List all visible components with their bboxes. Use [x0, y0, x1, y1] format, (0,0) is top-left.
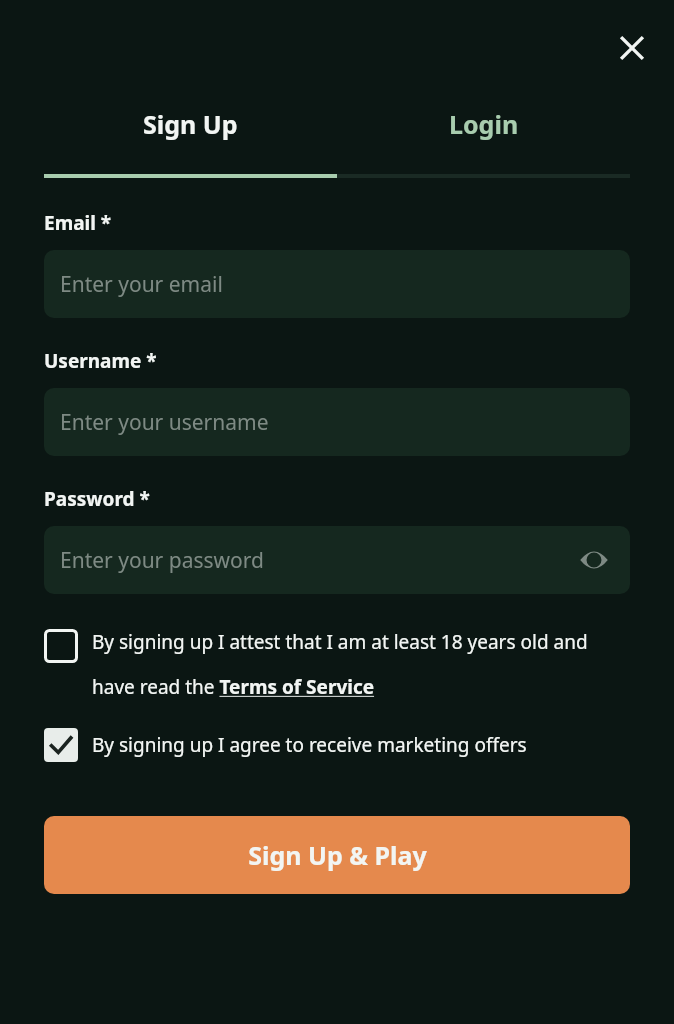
staticText: Login [449, 107, 519, 141]
button[interactable]: Login [337, 96, 630, 152]
staticText: By signing up I agree to receive marketi… [92, 732, 527, 758]
staticText: Enter your password [60, 546, 264, 575]
button[interactable]: Enter your password [44, 526, 630, 594]
staticText: Username * [44, 348, 157, 374]
staticText: Sign Up [143, 107, 238, 141]
button[interactable]: Close [608, 24, 656, 72]
staticText: Password * [44, 486, 150, 512]
button[interactable]: Show password [574, 540, 614, 580]
button[interactable]: Enter your email [44, 250, 630, 318]
button[interactable]: Unchecked [44, 629, 630, 700]
staticText: Enter your email [60, 270, 223, 299]
button[interactable]: Checked [44, 728, 630, 762]
staticText: Sign Up & Play [248, 838, 427, 872]
button[interactable]: Sign Up & Play [44, 816, 630, 894]
button[interactable]: Checked [44, 728, 78, 762]
staticText: Enter your username [60, 408, 269, 437]
button[interactable]: Unchecked [44, 629, 78, 663]
staticText: Email * [44, 210, 112, 236]
button[interactable]: Enter your username [44, 388, 630, 456]
button[interactable]: Sign Up [44, 96, 337, 152]
staticText: By signing up I attest that I am at leas… [92, 629, 630, 700]
